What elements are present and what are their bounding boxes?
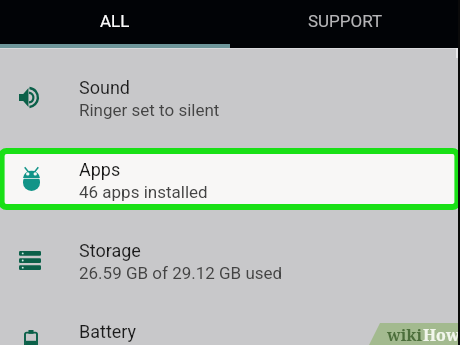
button[interactable]: Sound [0,50,460,131]
other: Sound [19,88,40,107]
staticText: Apps [79,159,121,180]
staticText: 26.59 GB of 29.12 GB used [79,263,283,283]
staticText: wiki [387,324,423,345]
button[interactable]: Storage [0,213,460,294]
staticText: 46 apps installed [79,182,208,202]
staticText: Sound [79,77,130,98]
staticText: ALL [100,11,130,31]
other: Battery [25,330,37,345]
button[interactable]: Apps [0,132,460,213]
staticText: Ringer set to silent [79,100,220,120]
button[interactable]: Battery [0,294,460,345]
staticText: SUPPORT [308,11,383,31]
other: Storage [19,251,41,270]
other: Apps [23,167,40,191]
staticText: Battery [79,321,137,342]
staticText: Storage [79,240,141,261]
button[interactable]: SUPPORT [230,0,460,45]
staticText: How [423,324,460,345]
button[interactable]: ALL [0,0,230,45]
